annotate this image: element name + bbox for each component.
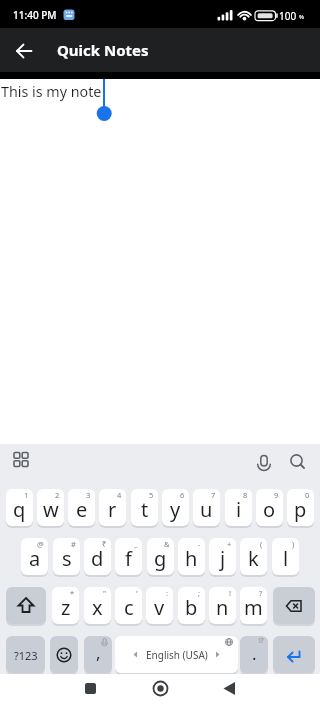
staticText: ( bbox=[260, 539, 263, 549]
staticText: l bbox=[283, 545, 289, 572]
staticText: v bbox=[154, 594, 165, 621]
button[interactable]: l bbox=[272, 538, 299, 576]
button[interactable]: s bbox=[53, 538, 80, 576]
staticText: u bbox=[200, 496, 213, 523]
button[interactable] bbox=[76, 678, 105, 707]
staticText: !? bbox=[259, 636, 264, 645]
button[interactable]: This is my note bbox=[0, 79, 320, 444]
button[interactable]: y bbox=[162, 489, 189, 527]
staticText: ₹ bbox=[102, 539, 107, 549]
button[interactable] bbox=[273, 587, 315, 625]
staticText: ?123 bbox=[14, 648, 38, 663]
button[interactable]: a bbox=[21, 538, 48, 576]
staticText: 2 bbox=[55, 490, 60, 500]
button[interactable]: k bbox=[240, 538, 267, 576]
staticText: ? bbox=[259, 588, 263, 598]
button[interactable] bbox=[0, 28, 44, 72]
staticText: b bbox=[185, 594, 198, 621]
button[interactable]: h bbox=[178, 538, 205, 576]
staticText: ! bbox=[229, 588, 232, 598]
staticText: . bbox=[252, 642, 257, 665]
staticText: & bbox=[164, 539, 170, 549]
staticText: a bbox=[29, 545, 41, 572]
staticText: d bbox=[91, 545, 104, 572]
staticText: y bbox=[170, 496, 181, 523]
button[interactable]: w bbox=[37, 489, 64, 527]
button[interactable]: i bbox=[225, 489, 252, 527]
button[interactable]: q bbox=[6, 489, 33, 527]
staticText: + bbox=[227, 539, 232, 549]
staticText: 3 bbox=[86, 490, 91, 500]
staticText: c bbox=[124, 594, 134, 621]
staticText: 0 bbox=[305, 490, 310, 500]
staticText: 4 bbox=[117, 490, 122, 500]
button[interactable]: z bbox=[52, 587, 79, 625]
staticText: 6 bbox=[180, 490, 185, 500]
button[interactable]: m bbox=[240, 587, 267, 625]
staticText: " bbox=[103, 588, 107, 598]
staticText: _ bbox=[134, 539, 138, 549]
staticText: i bbox=[236, 496, 242, 523]
staticText: 100 bbox=[279, 9, 297, 23]
button[interactable]: o bbox=[256, 489, 283, 527]
button[interactable]: b bbox=[178, 587, 205, 625]
staticText: n bbox=[216, 594, 229, 621]
button[interactable]: u bbox=[193, 489, 220, 527]
staticText: ) bbox=[292, 539, 295, 549]
button[interactable]: t bbox=[131, 489, 158, 527]
button[interactable] bbox=[7, 446, 35, 474]
staticText: s bbox=[62, 545, 72, 572]
staticText: t bbox=[141, 496, 149, 523]
staticText: English (USA) bbox=[146, 648, 208, 662]
staticText: % bbox=[299, 13, 304, 21]
staticText: Quick Notes bbox=[57, 40, 149, 60]
button[interactable]: p bbox=[287, 489, 314, 527]
staticText: p bbox=[294, 496, 307, 523]
button[interactable]: n bbox=[209, 587, 236, 625]
button[interactable]: v bbox=[146, 587, 173, 625]
button[interactable]: e bbox=[68, 489, 95, 527]
staticText: z bbox=[61, 594, 71, 621]
button[interactable] bbox=[273, 636, 315, 674]
staticText: q bbox=[13, 496, 26, 523]
button[interactable] bbox=[146, 674, 175, 703]
staticText: j bbox=[220, 545, 226, 572]
button[interactable]: f bbox=[115, 538, 142, 576]
staticText: r bbox=[108, 496, 117, 523]
button[interactable]: d bbox=[84, 538, 111, 576]
staticText: This is my note bbox=[1, 82, 102, 101]
button[interactable]: English (USA) bbox=[115, 636, 238, 674]
button[interactable] bbox=[283, 446, 311, 474]
staticText: : bbox=[166, 588, 169, 598]
staticText: 1 bbox=[24, 490, 29, 500]
staticText: - bbox=[198, 539, 201, 549]
staticText: 8 bbox=[243, 490, 248, 500]
button[interactable]: x bbox=[84, 587, 111, 625]
button[interactable]: r bbox=[99, 489, 126, 527]
staticText: ; bbox=[198, 588, 201, 598]
staticText: h bbox=[185, 545, 198, 572]
staticText: k bbox=[248, 545, 259, 572]
staticText: @ bbox=[37, 539, 44, 549]
staticText: 7 bbox=[211, 490, 216, 500]
button[interactable] bbox=[6, 587, 46, 625]
button[interactable] bbox=[215, 678, 244, 707]
button[interactable]: ?123 bbox=[6, 636, 45, 674]
staticText: f bbox=[125, 545, 132, 572]
button[interactable]: . bbox=[240, 636, 268, 674]
button[interactable]: , bbox=[84, 636, 112, 674]
button[interactable]: j bbox=[209, 538, 236, 576]
button[interactable]: g bbox=[147, 538, 174, 576]
staticText: * bbox=[70, 588, 75, 598]
button[interactable] bbox=[50, 636, 78, 674]
staticText: 11:40 PM bbox=[13, 8, 57, 22]
staticText: g bbox=[154, 545, 167, 572]
button[interactable] bbox=[250, 446, 278, 474]
staticText: o bbox=[263, 496, 276, 523]
staticText: w bbox=[43, 496, 59, 523]
staticText: # bbox=[71, 539, 76, 549]
button[interactable]: c bbox=[115, 587, 142, 625]
staticText: m bbox=[244, 594, 263, 621]
staticText: 9 bbox=[274, 490, 279, 500]
staticText: e bbox=[76, 496, 88, 523]
